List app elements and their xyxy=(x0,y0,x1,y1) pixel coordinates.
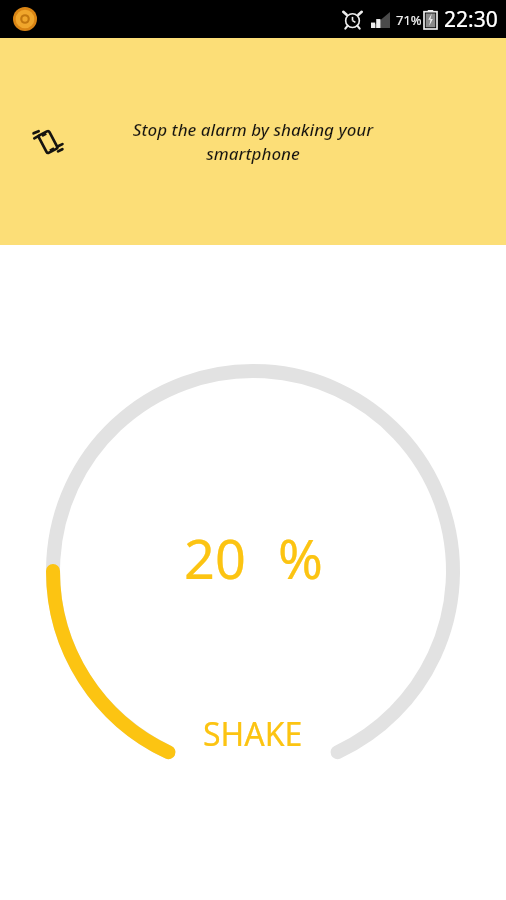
staticText: 22:30 xyxy=(444,5,498,34)
button[interactable]: Shake progress 20 percent xyxy=(40,358,466,784)
other: Shake phone xyxy=(22,116,74,168)
staticText: Stop the alarm by shaking your smartphon… xyxy=(60,118,446,165)
staticText: % xyxy=(278,521,323,595)
staticText: 71% xyxy=(396,11,422,29)
staticText: SHAKE xyxy=(203,712,303,756)
button[interactable]: Shake phone xyxy=(0,38,506,245)
staticText: 20 xyxy=(184,521,246,595)
